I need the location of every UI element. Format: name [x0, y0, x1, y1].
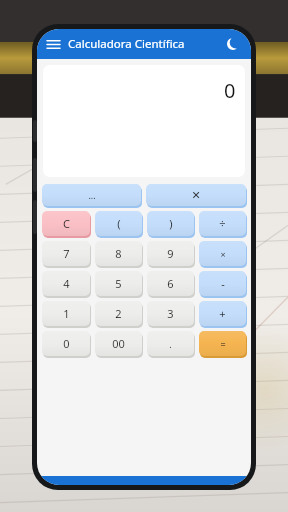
staticText: ÷ [219, 216, 226, 231]
staticText: 2 [115, 306, 122, 321]
button[interactable]: 4 [42, 271, 90, 296]
staticText: 8 [115, 246, 122, 261]
button[interactable]: ÷ [199, 211, 246, 236]
button[interactable]: ✕ [146, 184, 246, 206]
staticText: = [220, 338, 226, 350]
staticText: 5 [115, 276, 122, 291]
button[interactable]: 5 [95, 271, 142, 296]
button[interactable]: Dark mode [223, 34, 243, 54]
staticText: ✕ [191, 189, 201, 202]
staticText: 1 [63, 306, 70, 321]
staticText: + [219, 306, 226, 321]
button[interactable]: = [199, 331, 246, 356]
button[interactable]: 8 [95, 241, 142, 266]
staticText: × [220, 248, 226, 260]
button[interactable]: 0 [43, 65, 245, 177]
button[interactable]: C [42, 211, 90, 236]
button[interactable]: ... [42, 184, 141, 206]
button[interactable]: Menu [42, 33, 64, 55]
staticText: ( [117, 216, 121, 231]
button[interactable]: + [199, 301, 246, 326]
button[interactable]: ( [95, 211, 142, 236]
button[interactable]: 2 [95, 301, 142, 326]
staticText: 9 [167, 246, 174, 261]
button[interactable]: 7 [42, 241, 90, 266]
staticText: 0 [224, 77, 236, 104]
button[interactable]: ) [147, 211, 194, 236]
button[interactable]: . [147, 331, 194, 356]
button[interactable]: 00 [95, 331, 142, 356]
staticText: . [169, 338, 172, 350]
button[interactable]: 9 [147, 241, 194, 266]
staticText: ) [169, 216, 173, 231]
button[interactable]: - [199, 271, 246, 296]
staticText: ... [88, 189, 96, 201]
staticText: 7 [63, 246, 70, 261]
staticText: Calculadora Científica [68, 36, 185, 52]
staticText: C [63, 216, 70, 231]
button[interactable]: 0 [42, 331, 90, 356]
staticText: - [221, 276, 225, 291]
staticText: 6 [167, 276, 174, 291]
button[interactable]: 3 [147, 301, 194, 326]
staticText: 00 [112, 336, 125, 351]
staticText: 4 [63, 276, 70, 291]
button[interactable]: 1 [42, 301, 90, 326]
staticText: 3 [167, 306, 174, 321]
button[interactable]: × [199, 241, 246, 266]
button[interactable]: 6 [147, 271, 194, 296]
staticText: 0 [63, 336, 70, 351]
